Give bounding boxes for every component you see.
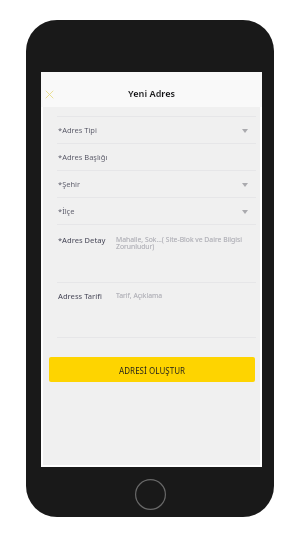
staticText: *Şehir: [58, 179, 81, 189]
button[interactable]: ADRESİ OLUŞTUR: [49, 357, 255, 382]
staticText: *Adres Başlığı: [58, 152, 108, 162]
button[interactable]: Adress Tarifi: [41, 283, 262, 336]
staticText: Yeni Adres: [128, 87, 176, 99]
staticText: Mahalle, Sok...( Site-Blok ve Daire Bilg…: [116, 235, 247, 251]
button[interactable]: *Adres Detay: [41, 225, 262, 282]
button[interactable]: *İlçe: [41, 198, 262, 224]
staticText: Tarif, Açıklama: [116, 291, 163, 300]
staticText: *Adres Tipi: [58, 125, 97, 135]
button[interactable]: *Adres Tipi: [41, 117, 262, 143]
button[interactable]: *Şehir: [41, 171, 262, 197]
button[interactable]: *Adres Başlığı: [41, 144, 262, 170]
staticText: *Adres Detay: [58, 235, 106, 245]
staticText: *İlçe: [58, 206, 75, 216]
button[interactable]: Close: [39, 84, 59, 104]
staticText: Adress Tarifi: [58, 291, 102, 301]
staticText: ADRESİ OLUŞTUR: [119, 365, 186, 376]
